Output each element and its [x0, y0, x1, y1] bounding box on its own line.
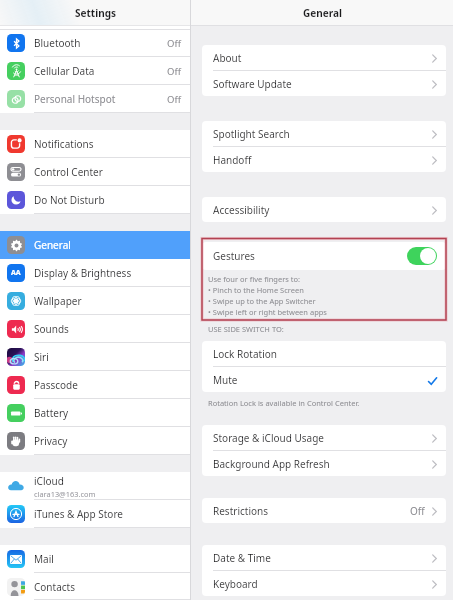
staticText: • Swipe up to the App Switcher — [208, 296, 316, 306]
button[interactable]: Contacts — [0, 573, 190, 600]
button[interactable]: AA — [0, 259, 190, 287]
staticText: Wallpaper — [34, 294, 82, 308]
button[interactable]: Restrictions — [202, 498, 446, 523]
staticText: Accessibility — [213, 203, 270, 217]
button[interactable]: Do Not Disturb — [0, 186, 190, 214]
staticText: Passcode — [34, 378, 78, 392]
button[interactable]: Mail — [0, 545, 190, 573]
staticText: iCloud — [34, 474, 64, 488]
staticText: AA — [11, 268, 21, 278]
staticText: Bluetooth — [34, 36, 81, 50]
staticText: USE SIDE SWITCH TO: — [208, 324, 284, 334]
button[interactable]: Gestures toggle on — [407, 247, 437, 265]
staticText: Siri — [34, 350, 49, 364]
button[interactable]: Handoff — [202, 147, 446, 172]
staticText: Privacy — [34, 434, 68, 448]
staticText: Keyboard — [213, 577, 258, 591]
button[interactable]: Battery — [0, 399, 190, 427]
staticText: Rotation Lock is available in Control Ce… — [208, 398, 360, 408]
button[interactable]: Siri — [0, 343, 190, 371]
button[interactable]: Accessibility — [202, 197, 446, 222]
button[interactable]: About — [202, 45, 446, 70]
staticText: Background App Refresh — [213, 457, 330, 471]
button[interactable]: Personal Hotspot — [0, 85, 190, 113]
staticText: Handoff — [213, 153, 252, 167]
button[interactable]: Cellular Data — [0, 57, 190, 85]
staticText: iTunes & App Store — [34, 507, 123, 521]
staticText: Mail — [34, 552, 54, 566]
staticText: Control Center — [34, 165, 103, 179]
staticText: Display & Brightness — [34, 266, 132, 280]
staticText: Battery — [34, 406, 69, 420]
staticText: Lock Rotation — [213, 347, 277, 361]
button[interactable]: Background App Refresh — [202, 451, 446, 476]
button[interactable]: Keyboard — [202, 571, 446, 596]
button[interactable]: Sounds — [0, 315, 190, 343]
staticText: • Pinch to the Home Screen — [208, 285, 304, 295]
staticText: Off — [167, 65, 181, 78]
staticText: General — [303, 6, 342, 20]
button[interactable]: iTunes & App Store — [0, 500, 190, 528]
staticText: Spotlight Search — [213, 127, 290, 141]
staticText: Settings — [75, 6, 116, 20]
staticText: Mute — [213, 373, 238, 387]
staticText: Do Not Disturb — [34, 193, 105, 207]
button[interactable]: Storage & iCloud Usage — [202, 425, 446, 450]
staticText: Restrictions — [213, 504, 268, 518]
button[interactable]: iCloud — [0, 472, 190, 500]
button[interactable]: Privacy — [0, 427, 190, 455]
button[interactable]: Mute — [202, 367, 446, 392]
staticText: Off — [410, 504, 425, 518]
button[interactable]: Wallpaper — [0, 287, 190, 315]
staticText: Date & Time — [213, 551, 271, 565]
staticText: Software Update — [213, 77, 292, 91]
staticText: Cellular Data — [34, 64, 95, 78]
button[interactable]: Lock Rotation — [202, 341, 446, 366]
staticText: Gestures — [213, 249, 255, 263]
staticText: About — [213, 51, 242, 65]
button[interactable]: Passcode — [0, 371, 190, 399]
staticText: General — [34, 238, 71, 252]
staticText: • Swipe left or right between apps — [208, 307, 327, 317]
staticText: Contacts — [34, 580, 75, 594]
staticText: Storage & iCloud Usage — [213, 431, 324, 445]
staticText: Personal Hotspot — [34, 92, 116, 106]
button[interactable]: Control Center — [0, 158, 190, 186]
staticText: clara13@163.com — [34, 489, 96, 499]
staticText: Notifications — [34, 137, 94, 151]
button[interactable]: Spotlight Search — [202, 121, 446, 146]
button[interactable]: Notifications — [0, 130, 190, 158]
button[interactable]: Software Update — [202, 71, 446, 96]
button[interactable]: General — [0, 231, 190, 259]
staticText: Use four or five fingers to: — [208, 274, 301, 284]
staticText: Sounds — [34, 322, 69, 336]
staticText: Off — [167, 37, 181, 50]
button[interactable]: Bluetooth — [0, 29, 190, 57]
button[interactable]: Gestures — [202, 242, 446, 270]
button[interactable]: Date & Time — [202, 545, 446, 570]
staticText: Off — [167, 93, 181, 106]
